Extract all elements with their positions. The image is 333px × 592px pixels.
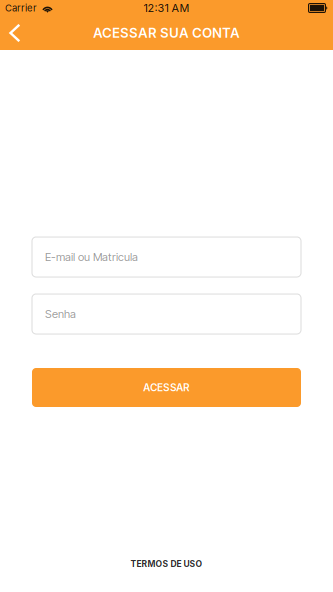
staticText: Senha xyxy=(45,307,76,321)
staticText: Carrier xyxy=(5,2,37,14)
button[interactable]: Back xyxy=(0,16,34,49)
staticText: ACESSAR xyxy=(143,381,190,394)
button[interactable]: ACESSAR xyxy=(32,368,301,407)
staticText: TERMOS DE USO xyxy=(130,559,202,569)
button[interactable]: Senha xyxy=(32,294,301,334)
button[interactable]: E-mail ou Matricula xyxy=(32,237,301,277)
staticText: 12:31 AM xyxy=(143,1,189,15)
button[interactable]: TERMOS DE USO xyxy=(118,553,214,575)
staticText: ACESSAR SUA CONTA xyxy=(93,25,240,41)
staticText: E-mail ou Matricula xyxy=(45,250,138,264)
